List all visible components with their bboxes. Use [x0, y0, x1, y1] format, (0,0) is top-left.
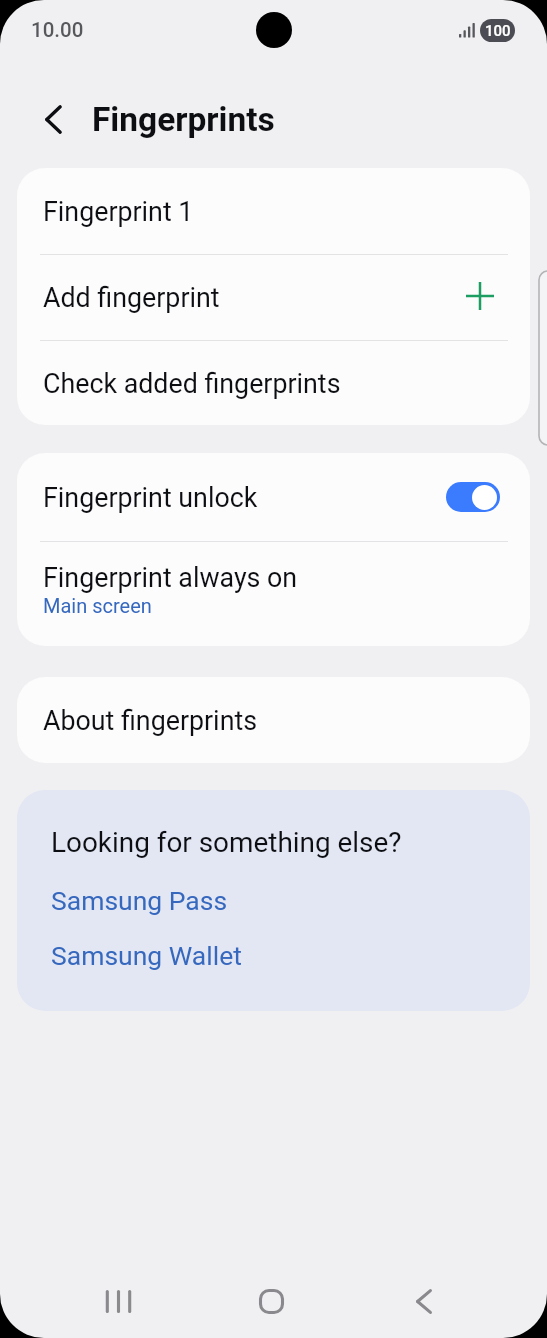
button[interactable]: Fingerprint 1: [17, 168, 530, 254]
button[interactable]: Fingerprint always on: [17, 542, 530, 646]
staticText: Fingerprint unlock: [43, 482, 258, 513]
staticText: Fingerprints: [92, 100, 275, 139]
staticText: 10.00: [31, 18, 84, 42]
button[interactable]: Samsung Pass: [51, 885, 228, 916]
button[interactable]: Add fingerprint: [458, 277, 500, 319]
staticText: Add fingerprint: [43, 282, 220, 313]
staticText: 100: [485, 22, 511, 40]
button[interactable]: About fingerprints: [17, 677, 530, 763]
staticText: About fingerprints: [43, 705, 258, 736]
button[interactable]: Fingerprint unlock: [17, 453, 530, 541]
staticText: Fingerprint always on: [43, 562, 298, 593]
button[interactable]: Samsung Wallet: [51, 940, 242, 971]
button[interactable]: Recent apps: [70, 1266, 166, 1336]
button[interactable]: Fingerprint unlock: [446, 482, 500, 512]
button[interactable]: Back: [376, 1266, 472, 1336]
staticText: Check added fingerprints: [43, 368, 341, 399]
button[interactable]: Add fingerprint: [17, 255, 530, 340]
button[interactable]: Home: [223, 1266, 319, 1336]
staticText: Main screen: [43, 594, 152, 617]
button[interactable]: Check added fingerprints: [17, 341, 530, 425]
staticText: Looking for something else?: [51, 826, 402, 859]
button[interactable]: Navigate up: [27, 93, 79, 145]
staticText: Fingerprint 1: [43, 196, 194, 227]
